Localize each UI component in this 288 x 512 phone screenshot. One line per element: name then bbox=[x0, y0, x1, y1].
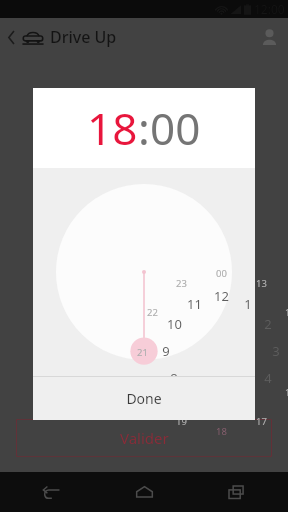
staticText: 4 bbox=[264, 369, 272, 387]
staticText: 00 bbox=[150, 98, 201, 158]
staticText: 2 bbox=[264, 315, 272, 333]
staticText: 14 bbox=[285, 306, 288, 319]
button[interactable]: Home bbox=[127, 475, 161, 509]
staticText: 00 bbox=[216, 267, 227, 280]
staticText: 10 bbox=[167, 315, 182, 333]
staticText: 11 bbox=[187, 295, 202, 313]
staticText: 13 bbox=[256, 277, 267, 290]
staticText: Done bbox=[126, 389, 162, 408]
staticText: Valider bbox=[120, 428, 169, 448]
staticText: 20 bbox=[147, 386, 158, 399]
button[interactable]: 18 bbox=[33, 88, 255, 168]
button[interactable]: Valider bbox=[16, 419, 272, 457]
staticText: 19 bbox=[176, 415, 187, 428]
staticText: 9 bbox=[162, 342, 170, 360]
button[interactable]: Account bbox=[250, 18, 288, 56]
staticText: : bbox=[138, 98, 150, 158]
staticText: Drive Up bbox=[50, 26, 117, 48]
staticText: 8 bbox=[170, 369, 178, 387]
staticText: 21 bbox=[137, 346, 148, 359]
staticText: 22 bbox=[147, 306, 158, 319]
button[interactable]: Back bbox=[34, 475, 68, 509]
button[interactable]: Done bbox=[33, 377, 255, 420]
staticText: 18 bbox=[87, 98, 138, 158]
staticText: 3 bbox=[272, 342, 280, 360]
staticText: 16 bbox=[285, 386, 288, 399]
staticText: 12 bbox=[214, 287, 229, 305]
button[interactable]: Recent apps bbox=[220, 475, 254, 509]
staticText: 18 bbox=[216, 425, 227, 438]
staticText: 23 bbox=[176, 277, 187, 290]
staticText: 17 bbox=[256, 415, 267, 428]
staticText: 1 bbox=[244, 295, 252, 313]
button[interactable]: Back bbox=[0, 18, 22, 56]
